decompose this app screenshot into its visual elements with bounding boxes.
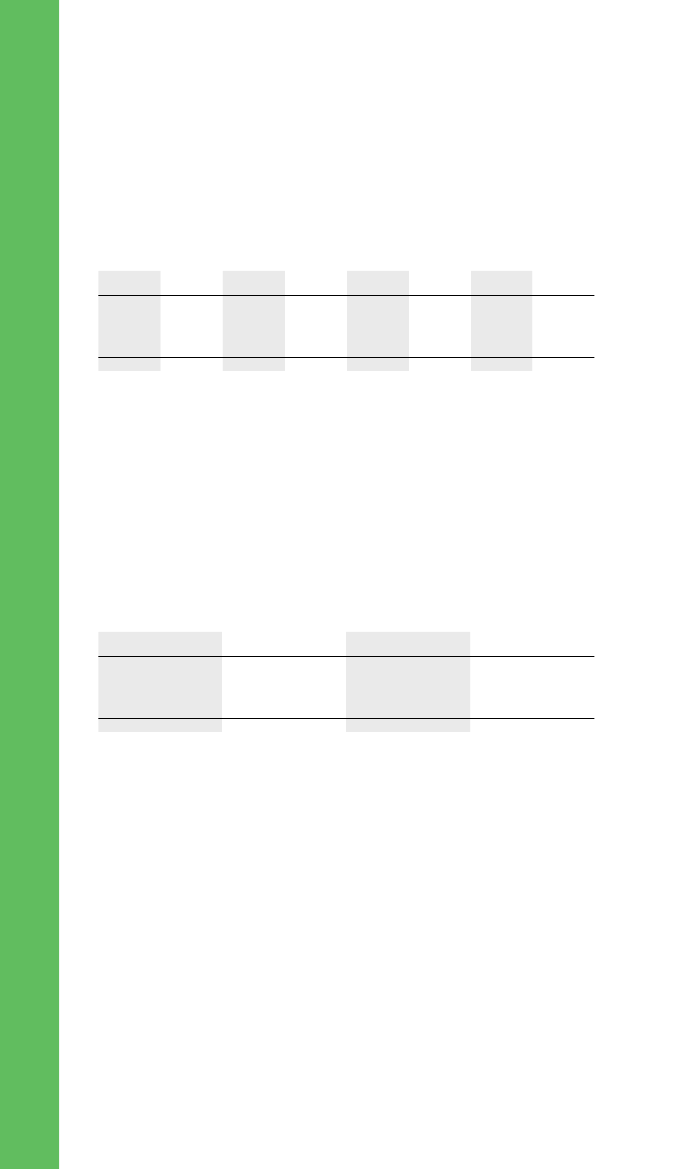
button[interactable]: Data table, four columns — [98, 271, 594, 371]
button[interactable]: Data table, two columns — [98, 632, 594, 732]
